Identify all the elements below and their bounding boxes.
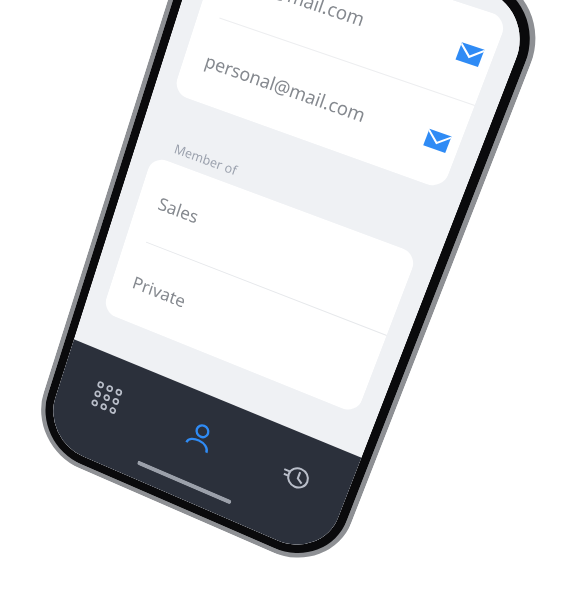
staticText: Private [129, 270, 376, 387]
staticText: Sales [155, 191, 407, 307]
button[interactable]: Sales [127, 155, 418, 335]
staticText: work@mail.com [229, 0, 463, 64]
button[interactable]: work@mail.com [199, 0, 508, 105]
button[interactable]: personal@mail.com [172, 12, 475, 190]
button[interactable]: Recents [239, 432, 355, 522]
other: Send email [422, 126, 452, 156]
button[interactable]: Contacts [145, 393, 256, 481]
button[interactable]: Private [102, 235, 387, 414]
other: Send email [454, 40, 486, 70]
staticText: personal@mail.com [202, 48, 431, 150]
button[interactable]: Dialpad [54, 355, 161, 441]
staticText: Member of [172, 139, 240, 179]
